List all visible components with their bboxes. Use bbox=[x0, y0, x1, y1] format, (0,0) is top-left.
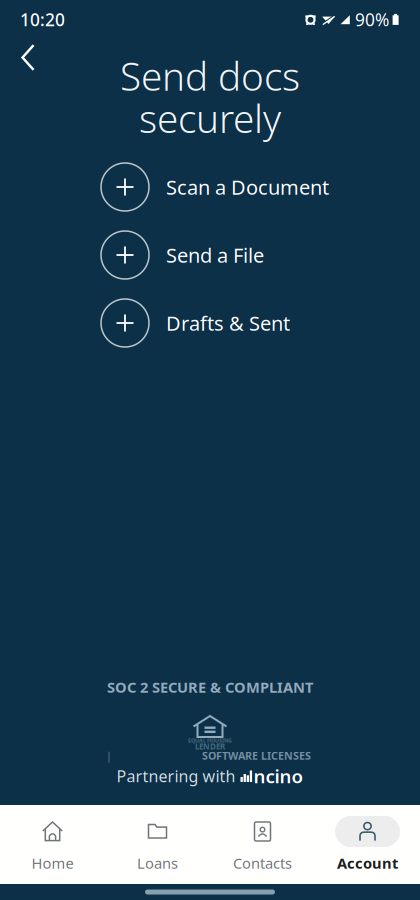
staticText: securely bbox=[139, 92, 281, 144]
button[interactable]: Back bbox=[0, 34, 35, 71]
staticText: | bbox=[106, 748, 112, 763]
staticText: Contacts bbox=[233, 853, 292, 873]
button[interactable]: SOFTWARE LICENSES bbox=[0, 748, 420, 763]
button[interactable]: Contacts bbox=[210, 805, 315, 884]
staticText: Loans bbox=[137, 853, 178, 873]
staticText: Drafts & Sent bbox=[166, 310, 290, 336]
staticText: SOC 2 SECURE & COMPLIANT bbox=[107, 677, 313, 697]
button[interactable]: Scan a Document bbox=[101, 153, 420, 221]
button[interactable]: Send a File bbox=[101, 221, 420, 289]
staticText: SOFTWARE LICENSES bbox=[202, 748, 311, 763]
button[interactable]: Drafts & Sent bbox=[101, 289, 420, 357]
staticText: EQUAL HOUSING bbox=[188, 737, 232, 744]
staticText: LENDER bbox=[195, 741, 225, 752]
staticText: Scan a Document bbox=[166, 174, 329, 200]
staticText: ncino bbox=[253, 764, 303, 788]
staticText: Send docs bbox=[120, 50, 300, 101]
staticText: Send a File bbox=[166, 242, 264, 268]
button[interactable]: Home bbox=[0, 805, 105, 884]
staticText: Partnering with bbox=[116, 765, 235, 787]
button[interactable]: Account bbox=[315, 805, 420, 884]
staticText: Account bbox=[337, 853, 398, 873]
button[interactable]: Loans bbox=[105, 805, 210, 884]
staticText: Home bbox=[31, 853, 73, 873]
staticText: 10:20 bbox=[20, 8, 65, 31]
staticText: 90% bbox=[355, 8, 389, 31]
